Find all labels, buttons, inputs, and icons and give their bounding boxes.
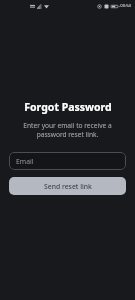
- staticText: Forgot Password: [24, 100, 112, 114]
- staticText: 00:54: [120, 3, 131, 9]
- staticText: Enter your email to receive a password r…: [8, 121, 127, 139]
- staticText: Send reset link: [44, 182, 92, 191]
- button[interactable]: Email: [9, 152, 126, 170]
- staticText: Email: [16, 157, 34, 166]
- button[interactable]: Send reset link: [9, 177, 126, 195]
